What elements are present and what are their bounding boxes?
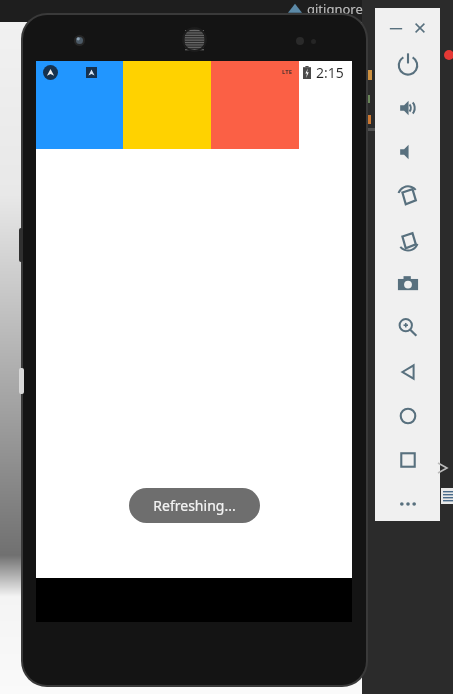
staticText: LTE [282, 68, 293, 76]
button[interactable]: Back [394, 358, 422, 386]
staticText: 2:15 [316, 63, 344, 82]
button[interactable]: Volume down [394, 138, 422, 166]
button[interactable]: Zoom [394, 314, 422, 342]
button[interactable]: Rotate left [394, 183, 422, 211]
staticText: Refreshing... [153, 496, 236, 515]
button[interactable]: Home [394, 402, 422, 430]
button[interactable] [211, 61, 299, 149]
button[interactable]: Power [394, 50, 422, 78]
button[interactable]: Overview [394, 446, 422, 474]
button[interactable] [36, 61, 123, 149]
staticText: gitignore [307, 0, 363, 18]
button[interactable]: Close [409, 17, 431, 39]
button[interactable]: More [394, 490, 422, 518]
button[interactable]: Minimize [385, 17, 407, 39]
button[interactable]: Volume up [394, 94, 422, 122]
button[interactable]: Rotate right [394, 227, 422, 255]
button[interactable]: Refreshing... [129, 488, 260, 523]
button[interactable]: Screenshot [394, 270, 422, 298]
